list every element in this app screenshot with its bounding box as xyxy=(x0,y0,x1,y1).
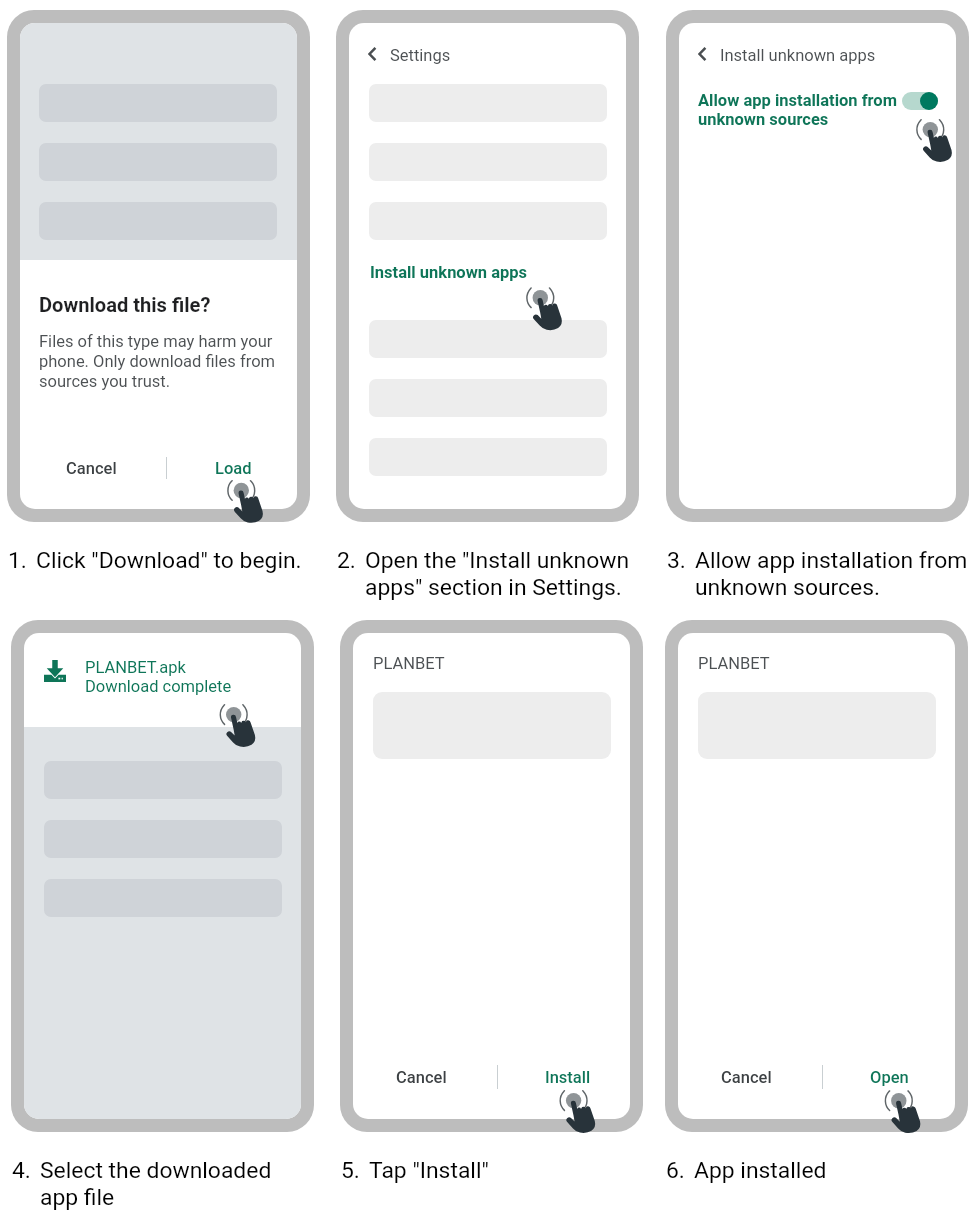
button[interactable]: Back xyxy=(691,42,715,66)
button[interactable]: PLANBET.apk Download complete xyxy=(24,633,301,727)
staticText: Cancel xyxy=(66,459,117,478)
staticText: Install unknown apps xyxy=(720,46,876,65)
staticText: Install xyxy=(545,1068,591,1087)
button[interactable]: Cancel xyxy=(708,1060,785,1095)
staticText: Files of this type may harm your phone. … xyxy=(39,331,287,391)
staticText: 1. xyxy=(8,546,36,573)
button[interactable]: Load xyxy=(202,451,265,486)
staticText: App installed xyxy=(694,1156,977,1183)
staticText: PLANBET.apk Download complete xyxy=(85,658,232,696)
staticText: Install unknown apps xyxy=(370,263,528,282)
staticText: Cancel xyxy=(396,1068,447,1087)
staticText: PLANBET xyxy=(698,654,770,673)
staticText: Settings xyxy=(390,46,451,65)
button[interactable]: Cancel xyxy=(383,1060,460,1095)
staticText: Open the "Install unknown apps" section … xyxy=(365,546,637,600)
staticText: 2. xyxy=(337,546,365,573)
staticText: 6. xyxy=(666,1156,694,1183)
staticText: 3. xyxy=(667,546,695,573)
button[interactable]: Back xyxy=(361,42,385,66)
staticText: Tap "Install" xyxy=(369,1156,659,1183)
button[interactable]: Cancel xyxy=(53,451,130,486)
staticText: Click "Download" to begin. xyxy=(36,546,346,573)
staticText: 5. xyxy=(341,1156,369,1183)
staticText: 4. xyxy=(12,1156,40,1183)
button[interactable]: Allow from unknown sources xyxy=(902,88,942,114)
staticText: Open xyxy=(870,1068,909,1087)
staticText: Cancel xyxy=(721,1068,772,1087)
button[interactable]: Install unknown apps xyxy=(364,259,534,286)
staticText: Select the downloaded app file xyxy=(40,1156,298,1210)
button[interactable]: Install xyxy=(532,1060,604,1095)
staticText: Allow app installation from unknown sour… xyxy=(698,91,913,129)
staticText: PLANBET xyxy=(373,654,445,673)
staticText: Allow app installation from unknown sour… xyxy=(695,546,977,600)
staticText: Download this file? xyxy=(39,293,211,317)
staticText: Load xyxy=(215,459,252,478)
button[interactable]: Open xyxy=(857,1060,922,1095)
button[interactable] xyxy=(369,320,607,358)
